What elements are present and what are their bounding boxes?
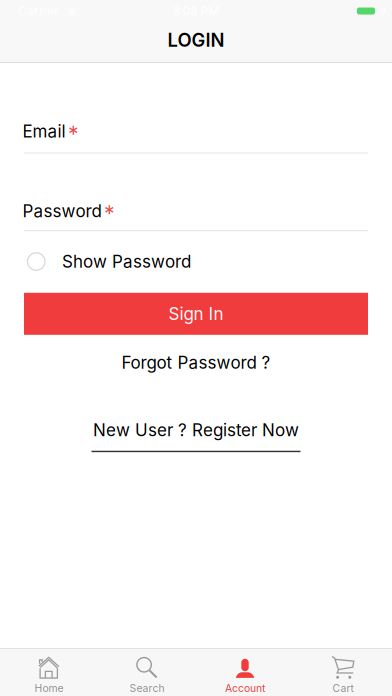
button[interactable]: Show Password <box>0 251 392 272</box>
staticText: Password <box>22 201 101 221</box>
staticText: * <box>104 201 115 226</box>
staticText: Account <box>225 682 265 694</box>
staticText: New User ? Register Now <box>93 420 299 440</box>
staticText: Cart <box>332 682 353 694</box>
staticText: * <box>68 121 79 147</box>
staticText: Home <box>34 682 63 694</box>
staticText: Forgot Password ? <box>121 352 270 373</box>
staticText: LOGIN <box>167 29 224 51</box>
staticText: Sign In <box>168 303 223 324</box>
button[interactable]: Sign In <box>0 293 392 335</box>
staticText: Show Password <box>62 251 191 272</box>
staticText: Search <box>129 682 164 694</box>
button[interactable]: Cart <box>294 649 392 696</box>
button[interactable]: Forgot Password ? <box>121 352 270 373</box>
button[interactable]: Search <box>98 649 196 696</box>
button[interactable]: Home <box>0 649 98 696</box>
staticText: Email <box>22 121 65 142</box>
button[interactable]: New User ? Register Now <box>91 420 300 452</box>
button[interactable]: Account <box>196 649 294 696</box>
